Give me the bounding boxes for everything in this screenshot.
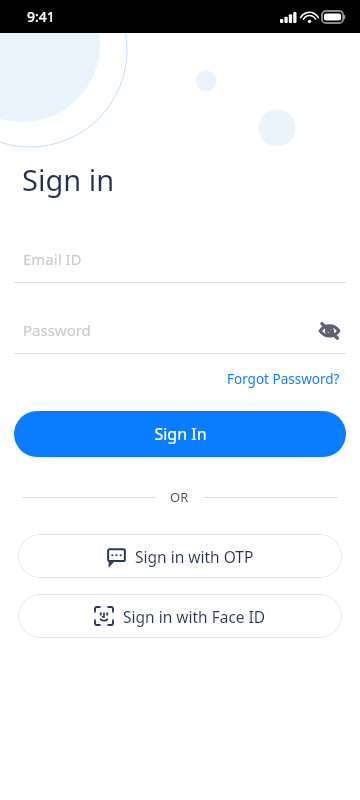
- button[interactable]: Password: [14, 314, 346, 346]
- button[interactable]: Show password: [312, 314, 346, 346]
- staticText: 9:41: [27, 7, 55, 26]
- button[interactable]: Sign In: [14, 411, 346, 457]
- staticText: Sign in with OTP: [135, 546, 254, 567]
- button[interactable]: Forgot Password?: [225, 368, 342, 390]
- staticText: Forgot Password?: [227, 370, 340, 388]
- button[interactable]: Sign in with OTP: [18, 534, 342, 578]
- staticText: Email ID: [23, 249, 82, 269]
- button[interactable]: Email ID: [14, 243, 346, 275]
- button[interactable]: Sign in with Face ID: [18, 594, 342, 638]
- staticText: Sign in with Face ID: [123, 606, 266, 627]
- staticText: Sign In: [154, 423, 207, 445]
- staticText: Password: [23, 320, 91, 340]
- staticText: Sign in: [22, 160, 115, 199]
- staticText: OR: [170, 488, 189, 506]
